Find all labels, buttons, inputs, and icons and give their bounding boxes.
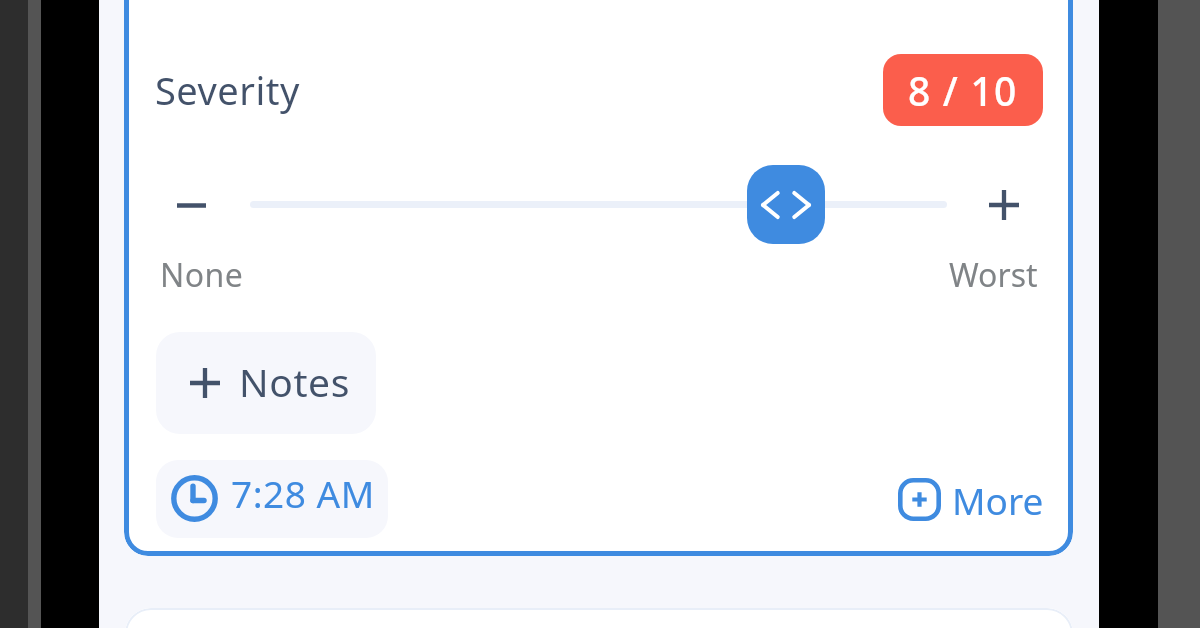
staticText: Worst: [949, 253, 1038, 297]
staticText: Severity: [155, 64, 300, 116]
button[interactable]: 7:28 AM: [156, 460, 388, 538]
button[interactable]: Decrease severity: [169, 188, 214, 222]
button[interactable]: More: [896, 472, 1042, 524]
staticText: Notes: [239, 355, 350, 408]
button[interactable]: Increase severity: [981, 188, 1026, 222]
button[interactable]: 8 / 10: [883, 54, 1043, 126]
button[interactable]: Severity slider: [747, 165, 825, 244]
staticText: More: [952, 475, 1044, 525]
staticText: 8 / 10: [908, 64, 1018, 117]
staticText: 7:28 AM: [231, 468, 375, 518]
button[interactable]: Notes: [156, 332, 376, 434]
staticText: None: [160, 253, 244, 297]
